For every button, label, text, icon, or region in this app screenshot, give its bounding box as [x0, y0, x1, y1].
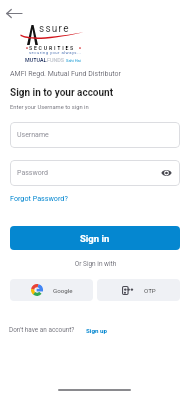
staticText: securing your always... — [29, 50, 82, 55]
staticText: FUNDS — [47, 57, 65, 63]
staticText: Google — [53, 287, 73, 294]
staticText: Don't have an account? — [9, 326, 75, 334]
staticText: AMFI Regd. Mutual Fund Distributor — [10, 70, 121, 78]
staticText: Sahi Hai — [66, 58, 81, 63]
button[interactable]: Sign in — [10, 226, 180, 250]
staticText: Or Sign in with — [0, 260, 191, 268]
button[interactable]: Back — [2, 1, 26, 25]
button[interactable]: Show password — [159, 166, 173, 180]
staticText: Password — [17, 169, 48, 177]
staticText: SECURITIES — [29, 45, 76, 51]
staticText: Username — [17, 131, 49, 139]
button[interactable]: Username — [10, 122, 180, 148]
staticText: ssure — [39, 23, 70, 35]
staticText: OTP — [144, 287, 156, 294]
button[interactable]: Password — [10, 160, 180, 186]
staticText: Enter your Username to sign in — [10, 104, 89, 111]
staticText: MUTUAL — [25, 57, 47, 63]
button[interactable]: Google — [10, 279, 93, 301]
button[interactable]: OTP — [97, 279, 180, 301]
button[interactable]: Forgot Password? — [9, 194, 69, 202]
staticText: Sign in — [80, 233, 110, 244]
staticText: Sign in to your account — [10, 87, 114, 99]
button[interactable]: Sign up — [86, 327, 107, 334]
